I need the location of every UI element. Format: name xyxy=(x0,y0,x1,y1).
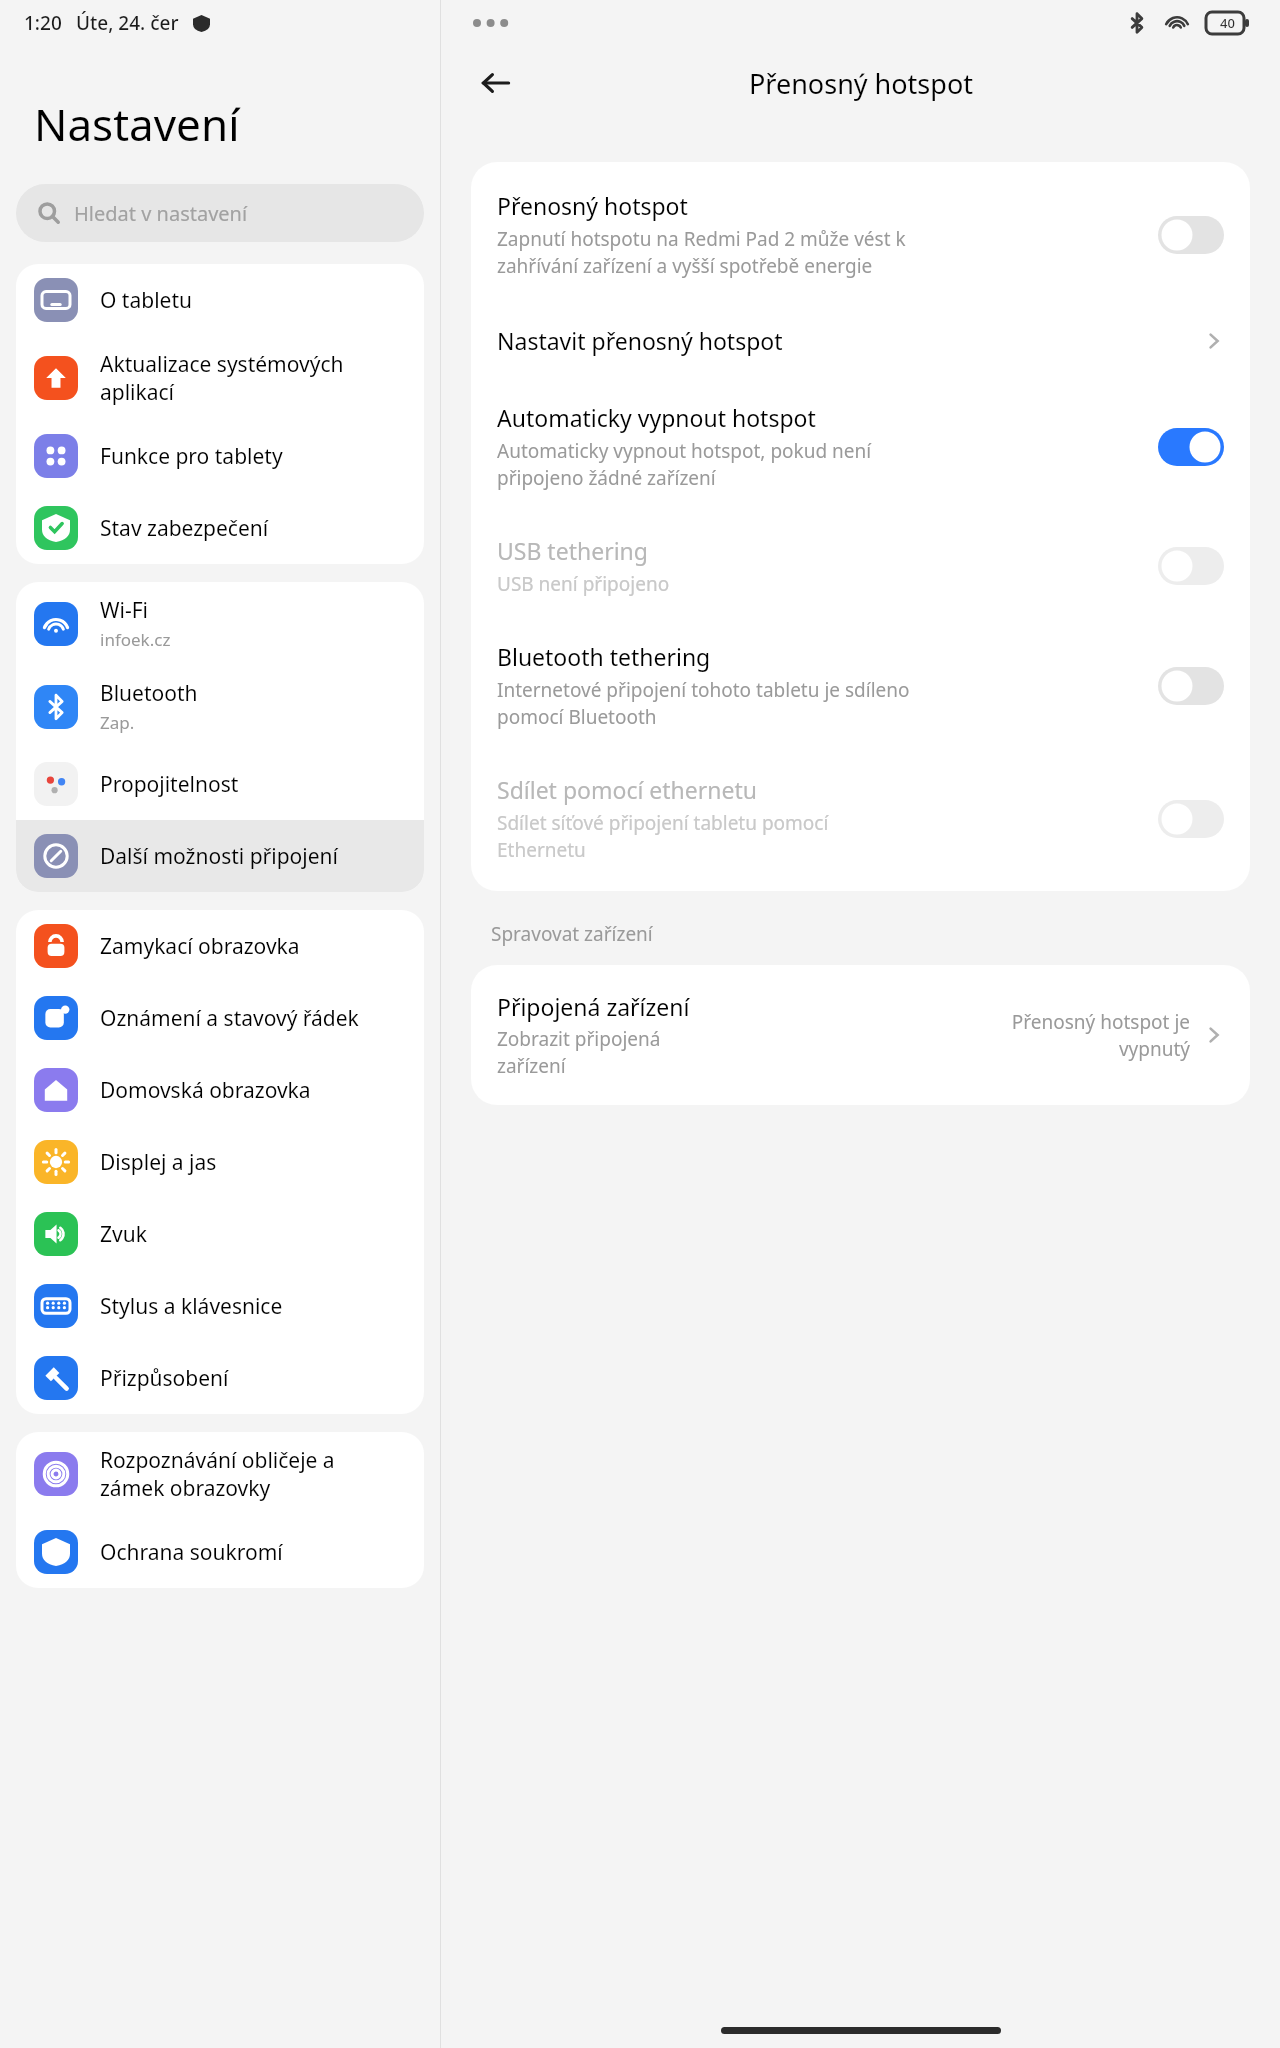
staticText: Hledat v nastavení xyxy=(74,200,248,227)
button[interactable]: Stav zabezpečení xyxy=(16,492,424,564)
button[interactable]: Nastavit přenosný hotspot xyxy=(471,301,1250,380)
staticText: Sdílet pomocí ethernetu xyxy=(497,774,757,805)
button[interactable]: O tabletu xyxy=(16,264,424,336)
button[interactable]: Toggle xyxy=(1158,216,1224,254)
button[interactable]: Další možnosti připojení xyxy=(16,820,424,892)
button[interactable]: Zamykací obrazovka xyxy=(16,910,424,982)
staticText: Funkce pro tablety xyxy=(100,442,283,471)
staticText: Aktualizace systémových aplikací xyxy=(100,350,344,406)
staticText: USB tethering xyxy=(497,535,648,566)
staticText: Nastavení xyxy=(34,94,240,154)
staticText: Zvuk xyxy=(100,1220,147,1249)
staticText: Spravovat zařízení xyxy=(491,921,653,947)
staticText: 40 xyxy=(1220,14,1235,32)
staticText: Automaticky vypnout hotspot, pokud není … xyxy=(497,438,872,491)
button[interactable]: Funkce pro tablety xyxy=(16,420,424,492)
button[interactable]: Back xyxy=(471,58,521,108)
staticText: Přenosný hotspot xyxy=(749,65,973,102)
button[interactable]: Propojitelnost xyxy=(16,748,424,820)
button[interactable]: Automaticky vypnout hotspot xyxy=(471,380,1250,513)
button[interactable]: Toggle xyxy=(1158,547,1224,585)
staticText: Zobrazit připojená zařízení xyxy=(497,1026,661,1079)
staticText: Další možnosti připojení xyxy=(100,842,338,871)
staticText: Úte, 24. čer xyxy=(76,10,179,36)
staticText: Zamykací obrazovka xyxy=(100,932,300,961)
button[interactable]: Bluetooth tethering xyxy=(471,619,1250,752)
staticText: Přenosný hotspot je vypnutý xyxy=(1011,1009,1190,1062)
staticText: Bluetooth tethering xyxy=(497,641,711,672)
button[interactable]: USB tethering xyxy=(471,513,1250,619)
button[interactable]: Přenosný hotspot xyxy=(471,168,1250,301)
button[interactable]: Rozpoznávání obličeje a zámek obrazovky xyxy=(16,1432,424,1516)
staticText: Bluetooth xyxy=(100,679,198,708)
button[interactable]: Wi-Fi xyxy=(16,582,424,665)
button[interactable]: Přizpůsobení xyxy=(16,1342,424,1414)
button[interactable]: Toggle xyxy=(1158,800,1224,838)
staticText: Stav zabezpečení xyxy=(100,514,269,543)
staticText: Přizpůsobení xyxy=(100,1364,229,1393)
staticText: O tabletu xyxy=(100,286,192,315)
button[interactable]: Domovská obrazovka xyxy=(16,1054,424,1126)
button[interactable]: Oznámení a stavový řádek xyxy=(16,982,424,1054)
staticText: Sdílet síťové připojení tabletu pomocí E… xyxy=(497,810,829,863)
staticText: Propojitelnost xyxy=(100,770,239,799)
button[interactable]: Zvuk xyxy=(16,1198,424,1270)
button[interactable]: Ochrana soukromí xyxy=(16,1516,424,1588)
button[interactable]: Stylus a klávesnice xyxy=(16,1270,424,1342)
button[interactable]: Hledat v nastavení xyxy=(16,184,424,242)
button[interactable]: Toggle xyxy=(1158,667,1224,705)
staticText: infoek.cz xyxy=(100,628,171,651)
staticText: Domovská obrazovka xyxy=(100,1076,311,1105)
staticText: Nastavit přenosný hotspot xyxy=(497,325,1204,356)
staticText: Přenosný hotspot xyxy=(497,190,688,221)
staticText: Zapnutí hotspotu na Redmi Pad 2 může vés… xyxy=(497,226,906,279)
button[interactable]: Toggle xyxy=(1158,428,1224,466)
staticText: 1:20 xyxy=(24,10,62,36)
staticText: USB není připojeno xyxy=(497,571,670,597)
staticText: Displej a jas xyxy=(100,1148,217,1177)
staticText: Stylus a klávesnice xyxy=(100,1292,283,1321)
button[interactable]: Připojená zařízení xyxy=(471,965,1250,1105)
button[interactable]: Displej a jas xyxy=(16,1126,424,1198)
button[interactable]: Aktualizace systémových aplikací xyxy=(16,336,424,420)
staticText: Připojená zařízení xyxy=(497,991,690,1022)
staticText: Oznámení a stavový řádek xyxy=(100,1004,359,1033)
staticText: Ochrana soukromí xyxy=(100,1538,283,1567)
staticText: Zap. xyxy=(100,711,135,734)
button[interactable]: Sdílet pomocí ethernetu xyxy=(471,752,1250,885)
button[interactable]: Bluetooth xyxy=(16,665,424,748)
staticText: Internetové připojení tohoto tabletu je … xyxy=(497,677,910,730)
staticText: Rozpoznávání obličeje a zámek obrazovky xyxy=(100,1446,335,1502)
staticText: Automaticky vypnout hotspot xyxy=(497,402,816,433)
staticText: Wi-Fi xyxy=(100,596,149,625)
